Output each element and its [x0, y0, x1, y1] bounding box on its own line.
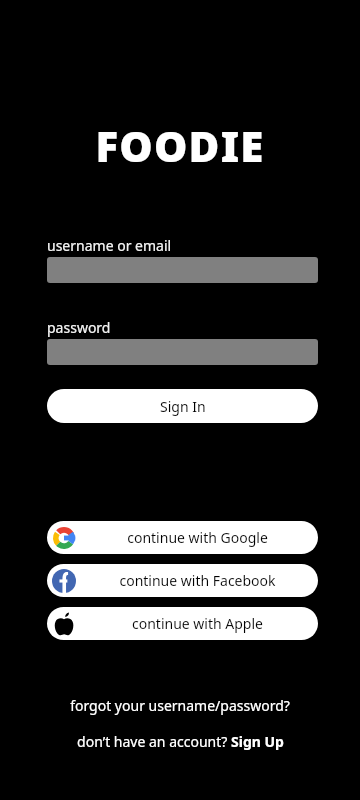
staticText: username or email	[47, 236, 172, 255]
staticText: Sign In	[160, 397, 206, 416]
button[interactable]: continue with Google	[47, 521, 318, 554]
staticText: continue with Facebook	[119, 571, 276, 590]
staticText: password	[47, 318, 111, 337]
button[interactable]: forgot your username/password?	[0, 696, 360, 715]
staticText: forgot your username/password?	[70, 696, 290, 715]
staticText: don’t have an account? Sign Up	[77, 732, 284, 751]
button[interactable]: continue with Apple	[47, 607, 318, 640]
button[interactable]: don’t have an account? Sign Up	[0, 732, 360, 751]
button[interactable]: Sign In	[47, 389, 318, 423]
staticText: FOODIE	[95, 117, 265, 174]
staticText: continue with Apple	[132, 614, 263, 633]
button[interactable]: continue with Facebook	[47, 564, 318, 597]
button[interactable]: username or email input	[47, 257, 318, 283]
staticText: continue with Google	[127, 528, 268, 547]
button[interactable]: password input	[47, 339, 318, 365]
